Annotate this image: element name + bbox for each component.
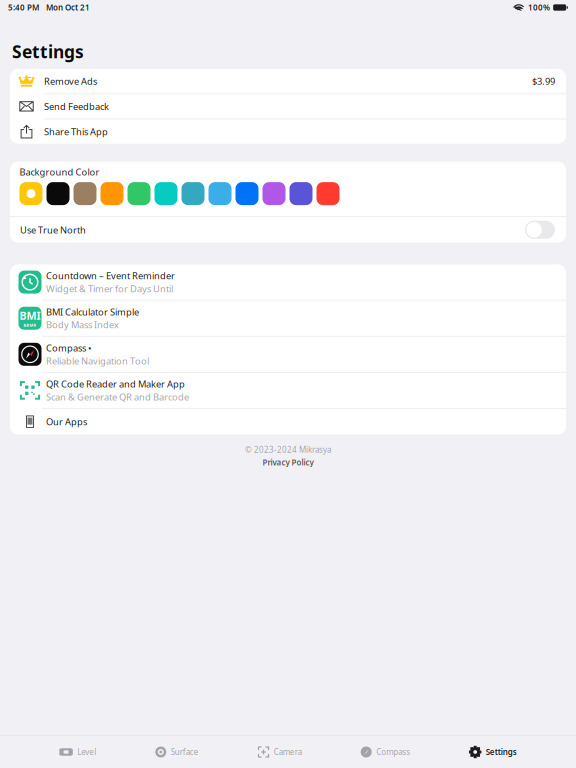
staticText: Level [77,747,96,757]
staticText: © 2023-2024 Mikrasya [245,444,331,455]
button[interactable] [46,182,69,205]
staticText: BMI [19,308,40,323]
staticText: Reliable Navigation Tool [46,355,149,367]
staticText: Settings [486,747,517,757]
staticText: BMI Calculator Simple [46,306,139,318]
staticText: Compass [376,747,410,757]
staticText: Background Color [19,166,99,178]
button[interactable] [316,182,339,205]
button[interactable] [525,221,555,239]
staticText: Use True North [20,224,86,236]
button[interactable] [235,182,258,205]
button[interactable]: Settings [469,736,517,768]
button[interactable] [73,182,96,205]
button[interactable]: Camera [258,736,302,768]
staticText: Camera [274,747,302,757]
staticText: Widget & Timer for Days Until [46,282,173,295]
button[interactable]: Privacy Policy [262,457,313,468]
staticText: QR Code Reader and Maker App [46,378,185,390]
staticText: Share This App [44,125,108,138]
button[interactable] [19,182,42,205]
staticText: Scan & Generate QR and Barcode [46,391,189,403]
button[interactable]: Compass [361,736,410,768]
button[interactable] [289,182,312,205]
staticText: 100% [528,2,550,13]
button[interactable]: Send Feedback [10,94,566,118]
staticText: Privacy Policy [262,457,313,468]
staticText: Our Apps [46,415,87,428]
button[interactable]: Level [59,736,96,768]
button[interactable] [154,182,177,205]
staticText: Compass • [46,342,92,354]
staticText: &BMR [23,323,36,328]
button[interactable]: BMI [10,301,566,336]
button[interactable] [262,182,285,205]
button[interactable]: Share This App [10,119,566,144]
button[interactable] [208,182,231,205]
button[interactable] [181,182,204,205]
staticText: Countdown – Event Reminder [46,269,175,282]
staticText: Body Mass Index [46,318,119,331]
button[interactable]: QR Code Reader and Maker App [10,373,566,408]
button[interactable]: Remove Ads [10,69,566,93]
button[interactable] [127,182,150,205]
button[interactable]: Compass • [10,337,566,372]
staticText: Surface [171,747,199,757]
button[interactable]: Surface [155,736,199,768]
staticText: Mon Oct 21 [46,2,90,13]
staticText: 5:40 PM [8,2,39,13]
staticText: Send Feedback [44,100,109,113]
button[interactable]: Countdown – Event Reminder [10,264,566,300]
staticText: $3.99 [532,75,555,87]
staticText: Remove Ads [44,75,97,87]
button[interactable]: Our Apps [10,409,566,434]
button[interactable] [100,182,123,205]
staticText: Settings [12,40,84,63]
